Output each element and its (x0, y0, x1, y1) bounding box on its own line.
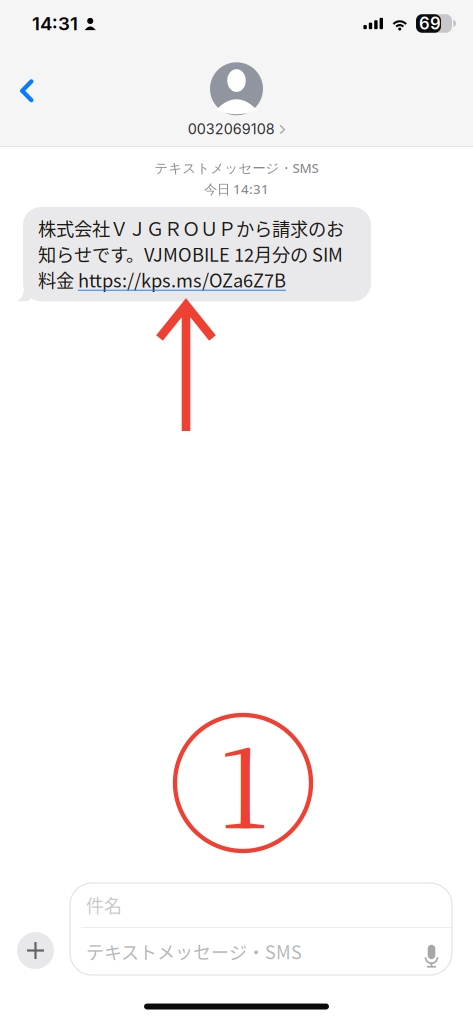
staticText: 1 (217, 702, 268, 859)
button[interactable]: 件名 (70, 883, 452, 975)
staticText: 株式会社ＶＪＧＲＯＵＰから請求のお知らせです。VJMOBILE 12月分の SI… (38, 215, 344, 292)
staticText: 14:31 (32, 12, 78, 35)
button[interactable]: Back (0, 69, 49, 112)
staticText: 0032069108 (188, 120, 275, 138)
staticText: テキストメッセージ・SMS (154, 159, 318, 177)
staticText: 69 (419, 13, 441, 34)
button[interactable]: Add attachment (0, 932, 70, 975)
staticText: 今日 14:31 (204, 180, 269, 198)
button[interactable]: 0032069108 (188, 62, 285, 138)
button[interactable]: 株式会社ＶＪＧＲＯＵＰから請求のお知らせです。VJMOBILE 12月分の SI… (23, 207, 371, 301)
staticText: 件名 (86, 892, 122, 918)
staticText: テキストメッセージ・SMS (86, 938, 302, 965)
